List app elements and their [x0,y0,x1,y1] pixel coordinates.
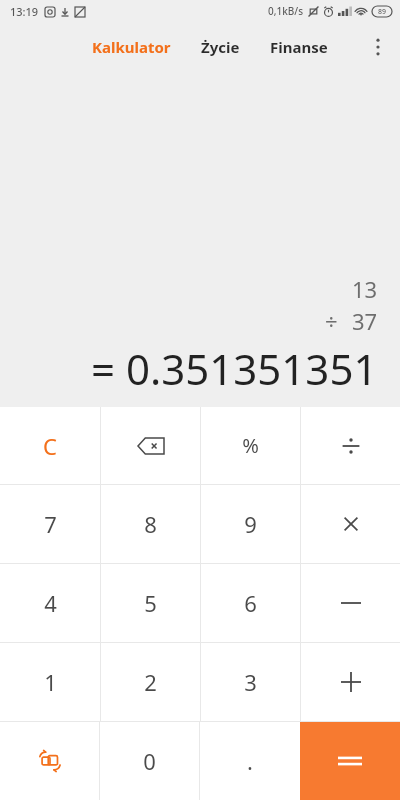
button[interactable]: C [0,407,100,484]
button[interactable]: Życie [197,31,244,63]
staticText: 6 [244,588,257,618]
button[interactable]: % [201,407,300,484]
button[interactable]: 8 [101,485,200,563]
staticText: = 0.351351351 [91,340,378,397]
staticText: 2 [144,667,157,697]
staticText: Życie [201,37,240,57]
staticText: 4 [44,588,57,618]
staticText: C [43,431,57,461]
button[interactable]: Minus [301,564,400,642]
button[interactable]: 4 [0,564,100,642]
staticText: 9 [244,509,257,539]
staticText: 5 [144,588,157,618]
staticText: 8 [144,509,157,539]
staticText: 13:19 [10,4,39,19]
button[interactable]: 0 [100,722,199,800]
button[interactable]: 5 [101,564,200,642]
button[interactable]: Multiply [301,485,400,563]
button[interactable]: 9 [201,485,300,563]
button[interactable]: Backspace [101,407,200,484]
staticText: 0 [143,746,156,776]
staticText: 0,1kB/s [268,4,304,18]
button[interactable]: Equals [300,722,400,800]
staticText: 37 [352,306,378,336]
staticText: % [242,432,259,459]
button[interactable]: 7 [0,485,100,563]
button[interactable]: 2 [101,643,200,721]
staticText: 89 [378,7,387,17]
staticText: Kalkulator [92,37,171,57]
button[interactable]: Kalkulator [88,31,175,63]
staticText: . [247,746,253,776]
staticText: 3 [244,667,257,697]
staticText: 7 [44,509,57,539]
staticText: ÷ [325,306,338,336]
button[interactable]: Unit converter [0,722,99,800]
button[interactable]: 6 [201,564,300,642]
staticText: 1 [44,667,57,697]
button[interactable]: 1 [0,643,100,721]
button[interactable]: More options [356,25,400,69]
button[interactable]: Plus [301,643,400,721]
staticText: 13 [352,274,378,304]
staticText: Finanse [270,37,328,57]
button[interactable]: Divide [301,407,400,484]
button[interactable]: . [200,722,300,800]
button[interactable]: 3 [201,643,300,721]
button[interactable]: Finanse [266,31,332,63]
